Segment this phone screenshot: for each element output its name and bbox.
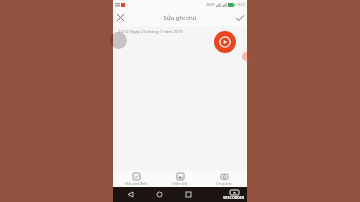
- button[interactable]: Save: [232, 10, 247, 25]
- button[interactable]: Back: [125, 189, 136, 200]
- staticText: 36K/S: [206, 3, 215, 7]
- staticText: 13:12 Ngày 25 tháng 7 năm 2019: [118, 29, 183, 35]
- button[interactable]: Chèn ảnh: [159, 173, 201, 186]
- button[interactable]: Home: [154, 189, 165, 200]
- button[interactable]: Kiểu ảnh/Ảnh: [115, 173, 157, 186]
- staticText: Chụp ảnh: [216, 181, 232, 186]
- staticText: Chèn ảnh: [172, 181, 188, 186]
- staticText: Kiểu ảnh/Ảnh: [125, 181, 147, 186]
- button[interactable]: Recents: [183, 189, 194, 200]
- staticText: Sửa ghi chú: [163, 14, 197, 22]
- button[interactable]: Close: [113, 10, 128, 25]
- button[interactable]: Chụp ảnh: [203, 173, 245, 186]
- button[interactable]: Record: [214, 31, 236, 53]
- staticText: VRECORDER: [223, 195, 245, 200]
- staticText: 13:12: [236, 2, 245, 7]
